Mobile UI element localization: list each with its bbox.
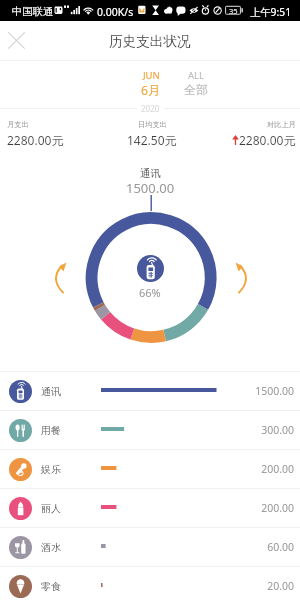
staticText: 2280.00元 [239,132,296,148]
button[interactable]: 酒水 [0,528,300,566]
staticText: JUN [143,69,160,82]
button[interactable]: Close [3,27,30,54]
button[interactable]: 娱乐 [0,450,300,488]
staticText: 60.00 [236,540,294,554]
staticText: 2280.00元 [7,132,64,148]
staticText: 丽人 [41,502,61,515]
staticText: 142.50元 [127,132,177,148]
staticText: 娱乐 [41,463,61,476]
staticText: 300.00 [236,423,294,437]
staticText: 中国联通 [12,5,54,18]
staticText: 月支出 [7,120,29,129]
staticText: 20.00 [236,579,294,593]
staticText: 历史支出状况 [109,33,191,50]
staticText: 0.00K/s [97,5,134,19]
staticText: 35 [229,6,238,16]
staticText: 全部 [184,82,209,97]
staticText: 1500.00 [126,179,175,197]
button[interactable]: 丽人 [0,489,300,527]
button[interactable]: 用餐 [0,411,300,449]
staticText: 酒水 [41,541,61,554]
staticText: 200.00 [236,462,294,476]
button[interactable]: 零食 [0,567,300,600]
staticText: ALL [188,69,205,82]
staticText: 日均支出 [138,120,167,129]
staticText: 200.00 [236,501,294,515]
staticText: 通讯 [41,385,61,398]
button[interactable]: JUN [129,66,173,99]
staticText: 对比上月 [267,120,296,129]
button[interactable]: 通讯 [137,255,164,282]
staticText: 通讯 [140,167,161,180]
staticText: 66% [139,285,161,300]
staticText: 上午9:51 [250,5,292,19]
button[interactable]: 通讯 [0,372,300,410]
staticText: 2020 [141,103,160,114]
staticText: 零食 [41,580,61,593]
staticText: 用餐 [41,424,61,437]
staticText: 1500.00 [236,384,294,398]
staticText: 6月 [141,82,161,99]
button[interactable]: ALL [174,66,218,97]
